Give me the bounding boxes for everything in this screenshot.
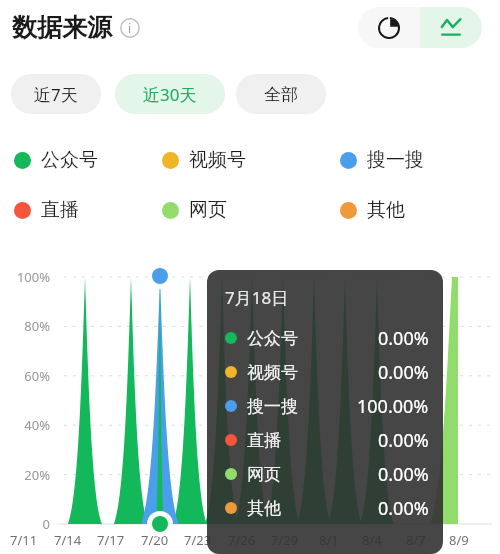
staticText: 直播 bbox=[247, 430, 281, 451]
staticText: 7/20 bbox=[141, 531, 169, 549]
staticText: 8/1 bbox=[319, 531, 339, 549]
staticText: 0.00% bbox=[378, 496, 429, 521]
staticText: 7/29 bbox=[271, 531, 299, 549]
button[interactable]: 饼图 bbox=[358, 7, 420, 48]
staticText: 搜一搜 bbox=[367, 148, 424, 172]
staticText: 8/9 bbox=[449, 531, 469, 549]
staticText: 网页 bbox=[247, 464, 281, 485]
button[interactable]: 折线图 bbox=[420, 7, 482, 48]
staticText: 视频号 bbox=[189, 148, 246, 172]
staticText: 近30天 bbox=[143, 83, 197, 106]
staticText: 全部 bbox=[264, 84, 298, 105]
button[interactable]: 网页 bbox=[162, 196, 227, 224]
staticText: 0.00% bbox=[378, 462, 429, 487]
button[interactable]: 7月18日 bbox=[207, 270, 443, 554]
staticText: 视频号 bbox=[247, 362, 298, 383]
button[interactable]: 视频号 bbox=[162, 146, 246, 174]
button[interactable]: 其他 bbox=[340, 196, 405, 224]
button[interactable]: 公众号 bbox=[14, 146, 98, 174]
button[interactable]: 近30天 bbox=[115, 74, 225, 114]
button[interactable]: 直播 bbox=[14, 196, 79, 224]
staticText: 7/26 bbox=[228, 531, 256, 549]
staticText: 搜一搜 bbox=[247, 396, 298, 417]
staticText: 7月18日 bbox=[225, 286, 289, 309]
staticText: 8/7 bbox=[406, 531, 426, 549]
button[interactable]: 全部 bbox=[236, 74, 326, 114]
staticText: 其他 bbox=[367, 198, 405, 222]
staticText: 公众号 bbox=[247, 328, 298, 349]
staticText: 7/17 bbox=[97, 531, 125, 549]
staticText: i bbox=[128, 20, 132, 36]
staticText: 0.00% bbox=[378, 326, 429, 351]
staticText: 60% bbox=[24, 367, 50, 385]
staticText: 100.00% bbox=[357, 394, 429, 419]
staticText: 0 bbox=[42, 515, 50, 533]
staticText: 近7天 bbox=[34, 83, 78, 106]
staticText: 20% bbox=[24, 466, 50, 484]
button[interactable]: 近7天 bbox=[11, 74, 101, 114]
staticText: 其他 bbox=[247, 498, 281, 519]
staticText: 7/14 bbox=[54, 531, 82, 549]
button[interactable]: 信息 bbox=[120, 18, 140, 38]
staticText: 数据来源 bbox=[12, 12, 112, 43]
staticText: 公众号 bbox=[41, 148, 98, 172]
staticText: 网页 bbox=[189, 198, 227, 222]
staticText: 0.00% bbox=[378, 428, 429, 453]
staticText: 40% bbox=[24, 416, 50, 434]
button[interactable]: 搜一搜 bbox=[340, 146, 424, 174]
staticText: 7/11 bbox=[10, 531, 38, 549]
staticText: 0.00% bbox=[378, 360, 429, 385]
staticText: 7/23 bbox=[184, 531, 212, 549]
staticText: 80% bbox=[24, 317, 50, 335]
staticText: 直播 bbox=[41, 198, 79, 222]
staticText: 8/4 bbox=[362, 531, 382, 549]
staticText: 100% bbox=[16, 268, 50, 286]
